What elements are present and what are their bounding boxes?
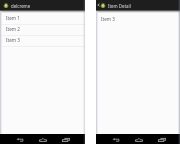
button[interactable]: Back (8, 134, 31, 144)
staticText: Item Detail (108, 3, 131, 9)
button[interactable]: Home (31, 134, 54, 144)
button[interactable]: Item 2 (0, 25, 85, 35)
staticText: Item 3 (6, 37, 20, 43)
staticText: Item 1 (6, 15, 20, 21)
button[interactable]: Back (104, 134, 127, 144)
button[interactable]: Item 1 (0, 14, 85, 24)
button[interactable]: Home (127, 134, 150, 144)
button[interactable]: Recent apps (54, 134, 77, 144)
button[interactable]: Item 3 (0, 36, 85, 46)
button[interactable]: Navigate up (96, 0, 100, 10)
staticText: Item 3 (101, 16, 115, 22)
staticText: Item 2 (6, 26, 20, 32)
staticText: delcreme (11, 3, 31, 9)
button[interactable]: Recent apps (150, 134, 173, 144)
